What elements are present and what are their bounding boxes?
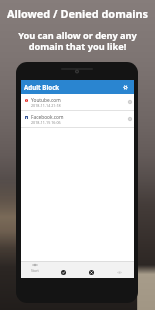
button[interactable]: Adult Block	[21, 80, 134, 94]
button[interactable]: More options	[127, 99, 132, 104]
staticText: 2018-11-15 16:06	[31, 120, 61, 125]
staticText: Start	[31, 268, 39, 273]
button[interactable]: Youtube.com	[21, 94, 134, 110]
button[interactable]: Start	[21, 262, 49, 278]
button[interactable]: Nav item	[105, 262, 133, 278]
staticText: You can allow or deny any domain that yo…	[0, 29, 155, 53]
staticText: Facebook.com	[31, 114, 64, 121]
staticText: Allowed / Denied domains	[0, 6, 155, 21]
button[interactable]: Nav item	[77, 262, 105, 278]
staticText: 2018-11-14 21:18	[31, 103, 61, 108]
button[interactable]: Facebook.com	[21, 111, 134, 127]
button[interactable]: More options	[127, 116, 132, 121]
button[interactable]: Settings	[121, 83, 130, 92]
staticText: Adult Block	[24, 83, 60, 91]
button[interactable]: Nav item	[49, 262, 77, 278]
staticText: Youtube.com	[31, 97, 61, 104]
